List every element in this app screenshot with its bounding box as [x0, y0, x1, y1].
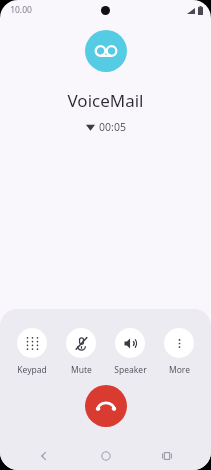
- button[interactable]: Mute: [58, 326, 104, 378]
- staticText: Speaker: [114, 364, 147, 376]
- button[interactable]: Recents: [149, 442, 185, 470]
- staticText: Keypad: [17, 364, 47, 376]
- staticText: 10.00: [10, 4, 32, 16]
- button[interactable]: Back: [26, 442, 62, 470]
- button[interactable]: Home: [88, 442, 124, 470]
- staticText: 00:05: [99, 120, 126, 134]
- button[interactable]: Keypad: [9, 326, 55, 378]
- staticText: Mute: [71, 364, 92, 376]
- button[interactable]: More: [156, 326, 202, 378]
- button[interactable]: End call: [85, 385, 127, 427]
- staticText: VoiceMail: [67, 89, 144, 112]
- button[interactable]: Speaker: [107, 326, 153, 378]
- staticText: More: [169, 364, 190, 376]
